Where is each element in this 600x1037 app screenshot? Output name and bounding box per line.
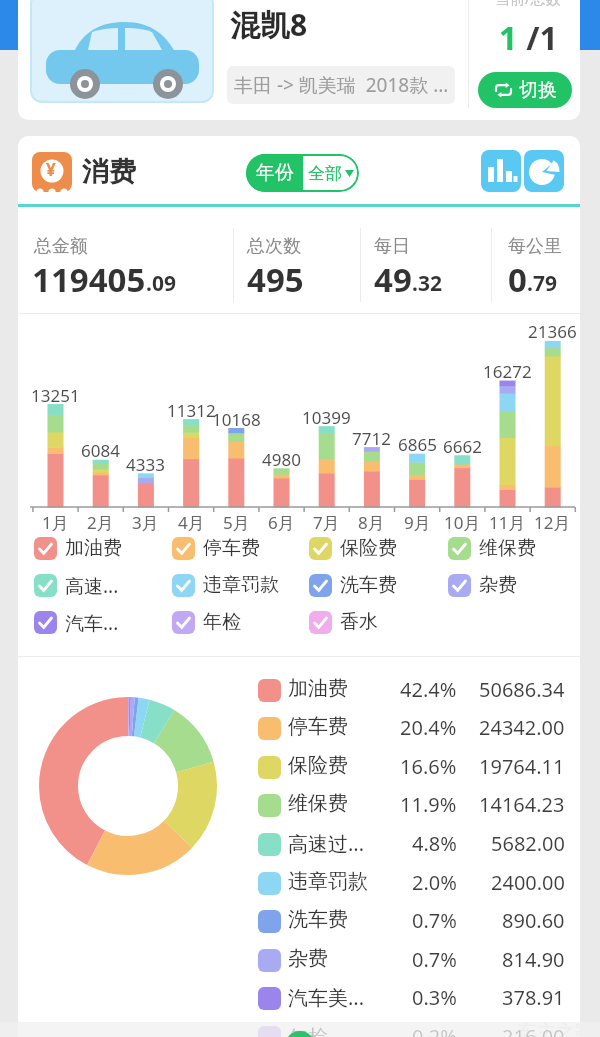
staticText: 1月: [42, 511, 69, 534]
staticText: 违章罚款: [288, 869, 368, 894]
staticText: 13251: [31, 384, 80, 407]
staticText: 0: [508, 257, 527, 302]
staticText: 8月: [358, 511, 385, 534]
staticText: 14164.23: [479, 791, 565, 818]
button[interactable]: [258, 679, 566, 709]
staticText: 10399: [302, 406, 351, 429]
staticText: 当前/总数: [495, 0, 561, 8]
staticText: 4月: [178, 511, 205, 534]
staticText: 9月: [404, 511, 431, 534]
staticText: 0.7%: [412, 946, 457, 973]
staticText: 总金额: [34, 235, 88, 258]
staticText: 车主之家: [518, 1020, 580, 1037]
staticText: 3月: [132, 511, 159, 534]
staticText: 11月: [489, 511, 526, 534]
button[interactable]: [524, 150, 564, 192]
button[interactable]: [34, 611, 57, 634]
staticText: 16272: [483, 360, 532, 383]
button[interactable]: [258, 717, 566, 747]
button[interactable]: 年份: [246, 154, 359, 192]
staticText: 年检...: [288, 1023, 345, 1037]
button[interactable]: [448, 574, 471, 597]
staticText: 年检: [203, 610, 241, 634]
staticText: 10月: [444, 511, 481, 534]
button[interactable]: [309, 611, 332, 634]
staticText: 42.4%: [400, 676, 457, 703]
button[interactable]: [448, 537, 471, 560]
staticText: .79: [527, 269, 557, 298]
button[interactable]: [481, 150, 521, 192]
staticText: 汽车...: [65, 610, 119, 636]
staticText: 高速过...: [288, 830, 365, 857]
staticText: 加油费: [288, 676, 348, 701]
staticText: 香水: [340, 610, 378, 634]
staticText: 0.7%: [412, 907, 457, 934]
button[interactable]: [172, 611, 195, 634]
button[interactable]: [258, 833, 566, 863]
button[interactable]: 切换: [478, 72, 572, 108]
staticText: .32: [412, 269, 442, 298]
staticText: 4333: [126, 453, 165, 476]
button[interactable]: [258, 756, 566, 786]
staticText: 814.90: [502, 946, 565, 973]
staticText: 6084: [81, 439, 120, 462]
staticText: 4980: [262, 448, 301, 471]
button[interactable]: [309, 537, 332, 560]
button[interactable]: [258, 987, 566, 1017]
staticText: 保险费: [288, 753, 348, 778]
button[interactable]: [34, 537, 57, 560]
staticText: 1: [499, 16, 518, 60]
staticText: 停车费: [203, 536, 260, 560]
staticText: 全部: [308, 163, 342, 184]
staticText: 11312: [167, 399, 216, 422]
staticText: 50686.34: [479, 676, 565, 703]
button[interactable]: [258, 794, 566, 824]
staticText: 890.60: [502, 907, 565, 934]
button[interactable]: [34, 574, 57, 597]
staticText: 4.8%: [412, 830, 457, 857]
staticText: 6月: [268, 511, 295, 534]
staticText: 2月: [87, 511, 114, 534]
button[interactable]: [172, 537, 195, 560]
staticText: 7月: [313, 511, 340, 534]
staticText: .09: [146, 269, 176, 298]
button[interactable]: [258, 949, 566, 979]
button[interactable]: [172, 574, 195, 597]
staticText: 10168: [212, 408, 261, 431]
staticText: 11.9%: [400, 791, 457, 818]
button[interactable]: [258, 910, 566, 940]
staticText: 违章罚款: [203, 573, 279, 597]
staticText: 切换: [519, 78, 557, 102]
staticText: 维保费: [479, 536, 536, 560]
staticText: 每公里: [508, 235, 562, 258]
staticText: 年份: [256, 161, 294, 185]
staticText: 汽车美...: [288, 984, 365, 1011]
staticText: 丰田 -> 凯美瑞 2018款 ...: [234, 72, 449, 98]
staticText: 20.4%: [400, 714, 457, 741]
staticText: 6865: [398, 433, 437, 456]
staticText: 2400.00: [491, 869, 565, 896]
staticText: 杂费: [479, 573, 517, 597]
staticText: 0.3%: [412, 984, 457, 1011]
staticText: 2.0%: [412, 869, 457, 896]
staticText: ¥: [46, 158, 56, 181]
staticText: 49: [374, 257, 412, 302]
button[interactable]: [258, 872, 566, 902]
staticText: 7712: [352, 427, 391, 450]
staticText: 消费: [82, 155, 136, 189]
staticText: 5月: [223, 511, 250, 534]
staticText: 119405: [32, 257, 146, 302]
staticText: 保险费: [340, 536, 397, 560]
staticText: 每日: [374, 235, 410, 258]
staticText: 495: [247, 257, 304, 302]
staticText: 6662: [443, 435, 482, 458]
staticText: 24342.00: [479, 714, 565, 741]
button[interactable]: [309, 574, 332, 597]
staticText: 加油费: [65, 536, 122, 560]
staticText: 杂费: [288, 946, 328, 971]
button[interactable]: [285, 1031, 315, 1037]
button[interactable]: [258, 1026, 566, 1037]
staticText: 洗车费: [288, 907, 348, 932]
staticText: 混凯8: [230, 4, 308, 45]
staticText: 维保费: [288, 791, 348, 816]
